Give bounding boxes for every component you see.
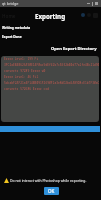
- button[interactable]: Maximize: [94, 0, 99, 7]
- button[interactable]: Home: [2, 13, 16, 19]
- button[interactable]: Minimize: [86, 0, 91, 7]
- staticText: Do not interact with Photoshop while exp…: [10, 178, 87, 183]
- button[interactable]: Open Export Directory: [49, 44, 99, 54]
- button[interactable]: Close: [92, 12, 98, 18]
- staticText: Exporting: [35, 12, 66, 20]
- button[interactable]: Restore: [91, 0, 94, 7]
- staticText: qt bridge: [2, 1, 19, 6]
- staticText: Error Level: 199 Fi: [4, 57, 39, 61]
- staticText: converts 97289 Error w0: [4, 69, 46, 73]
- staticText: 3FC2aEB4B626A90E14F0ac9dEf41b7cA932bE0d7…: [4, 63, 99, 67]
- staticText: converts 572686 Error cod: [4, 87, 50, 91]
- staticText: Export Done: [2, 35, 22, 39]
- staticText: OK: [48, 188, 55, 194]
- button[interactable]: Settings: [86, 12, 92, 18]
- staticText: Writing metadata: [2, 26, 31, 30]
- staticText: Error Level: 46 Fil: [4, 75, 39, 79]
- staticText: 5dcabF2AF21e4F14BB091F2690F1a3e8dD2ba5A8…: [4, 81, 99, 85]
- button[interactable]: Info: [80, 12, 86, 18]
- staticText: Open Export Directory: [51, 46, 97, 52]
- button[interactable]: OK: [44, 187, 59, 195]
